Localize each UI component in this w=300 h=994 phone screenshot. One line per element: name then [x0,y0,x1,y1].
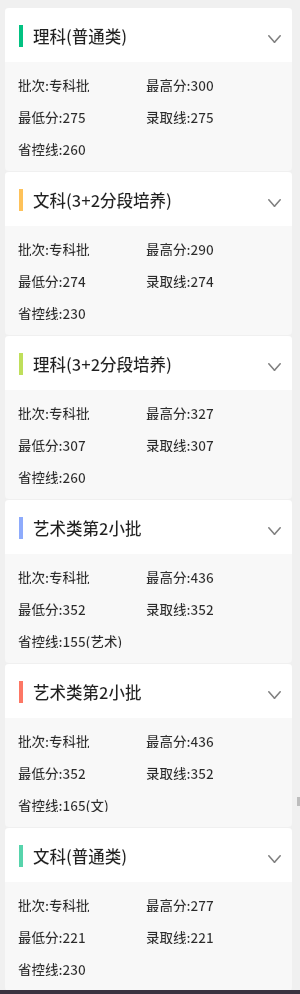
staticText: 最低分:307 [18,435,146,452]
staticText: 录取线:274 [146,271,214,288]
button[interactable]: 理科(普通类) [5,8,292,62]
staticText: 批次:专科批 [18,731,146,748]
staticText: 省控线:260 [18,139,86,156]
button[interactable]: 文科(3+2分段培养) [5,172,292,226]
staticText: 省控线:230 [18,303,86,320]
staticText: 最低分:221 [18,927,146,944]
staticText: 最低分:274 [18,271,146,288]
staticText: 最高分:436 [146,567,214,584]
staticText: 最低分:352 [18,763,146,780]
staticText: 最高分:300 [146,75,214,92]
staticText: 最低分:352 [18,599,146,616]
staticText: 理科(3+2分段培养) [33,352,268,376]
button[interactable]: 艺术类第2小批 [5,500,292,554]
staticText: 录取线:221 [146,927,214,944]
staticText: 文科(3+2分段培养) [33,188,268,212]
staticText: 批次:专科批 [18,567,146,584]
staticText: 录取线:275 [146,107,214,124]
staticText: 批次:专科批 [18,75,146,92]
staticText: 批次:专科批 [18,403,146,420]
staticText: 最高分:290 [146,239,214,256]
staticText: 录取线:307 [146,435,214,452]
staticText: 批次:专科批 [18,239,146,256]
staticText: 最高分:277 [146,895,214,912]
button[interactable]: 文科(普通类) [5,828,292,882]
staticText: 理科(普通类) [33,24,268,48]
staticText: 省控线:260 [18,467,86,484]
staticText: 录取线:352 [146,599,214,616]
staticText: 最高分:327 [146,403,214,420]
staticText: 最高分:436 [146,731,214,748]
staticText: 艺术类第2小批 [33,680,268,704]
staticText: 省控线:230 [18,959,86,976]
staticText: 艺术类第2小批 [33,516,268,540]
button[interactable]: 艺术类第2小批 [5,664,292,718]
staticText: 文科(普通类) [33,844,268,868]
staticText: 录取线:352 [146,763,214,780]
staticText: 最低分:275 [18,107,146,124]
staticText: 批次:专科批 [18,895,146,912]
staticText: 省控线:165(文) [18,795,109,812]
button[interactable]: 理科(3+2分段培养) [5,336,292,390]
staticText: 省控线:155(艺术) [18,631,123,648]
